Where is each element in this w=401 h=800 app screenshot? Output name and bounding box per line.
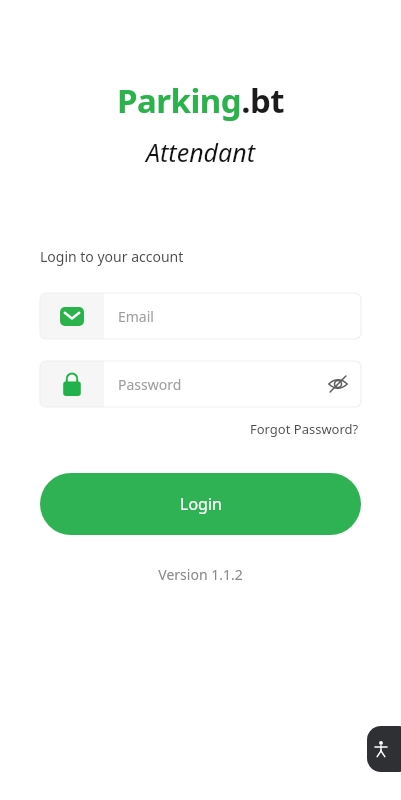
button[interactable]: Accessibility (367, 726, 401, 772)
staticText: Login to your account (40, 247, 184, 266)
staticText: Version 1.1.2 (158, 565, 243, 584)
staticText: Attendant (146, 135, 256, 169)
staticText: Password (118, 375, 182, 394)
button[interactable]: Show password (315, 361, 361, 407)
button[interactable]: Password (40, 361, 361, 407)
staticText: Forgot Password? (250, 420, 359, 438)
button[interactable]: Forgot Password? (248, 417, 361, 441)
button[interactable]: Login (40, 473, 361, 535)
staticText: Email (118, 307, 154, 326)
staticText: Parking.bt (117, 78, 285, 123)
staticText: Login (180, 493, 222, 515)
button[interactable]: Email (40, 293, 361, 339)
